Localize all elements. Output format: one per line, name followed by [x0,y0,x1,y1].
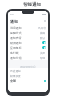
button[interactable]: 免打扰 [10,50,46,55]
button[interactable]: 消息通知 [10,25,46,30]
staticText: 横幅 [40,31,46,34]
staticText: 通知声音 [10,36,22,40]
button[interactable]: 权限设置 [10,73,46,78]
button[interactable]: 历史通知 [10,68,46,73]
button[interactable]: 通知分组 [10,55,46,60]
button[interactable]: 全部 [10,78,46,83]
staticText: 智能通知 [23,2,41,8]
button[interactable]: 应用角标 [10,45,46,50]
staticText: 消息通知 [10,26,22,30]
button[interactable]: 通知 [8,17,48,25]
staticText: 通知分组 [10,56,22,60]
staticText: 应用角标 [10,46,22,50]
staticText: 默认 [40,36,46,39]
staticText: 锁屏通知 [10,41,22,45]
button[interactable]: 通知声音 [10,35,46,40]
staticText: 免打扰 [10,51,19,55]
staticText: 智能 [40,56,46,59]
button[interactable]: 锁屏通知 [10,40,46,45]
staticText: 已开启 [38,26,46,29]
staticText: 权限设置 [10,74,21,77]
staticText: 通知管理中心 [20,65,36,68]
staticText: 历史通知 [10,69,21,72]
staticText: 关闭 [40,51,46,54]
staticText: 通知 [10,19,18,24]
button[interactable]: 提醒方式 [10,30,46,35]
staticText: 9:41 [10,13,15,16]
staticText: 提醒方式 [10,31,22,35]
staticText: 全部 [10,79,16,83]
